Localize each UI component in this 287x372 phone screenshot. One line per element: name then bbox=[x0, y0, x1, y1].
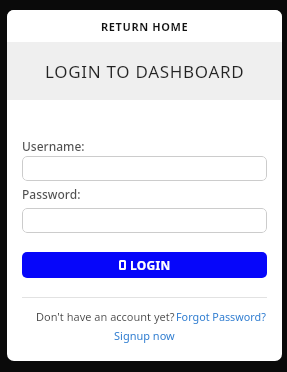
staticText: RETURN HOME bbox=[101, 19, 189, 34]
button[interactable]: Signup now bbox=[114, 328, 175, 343]
button[interactable]: RETURN HOME bbox=[7, 10, 282, 42]
staticText: Username: bbox=[22, 138, 85, 154]
staticText: LOGIN bbox=[130, 257, 171, 273]
staticText: Password: bbox=[22, 186, 81, 202]
staticText: LOGIN TO DASHBOARD bbox=[45, 60, 245, 83]
button[interactable] bbox=[22, 208, 267, 233]
staticText: Don't have an account yet? bbox=[36, 309, 175, 324]
button[interactable]: LOGIN bbox=[22, 252, 267, 278]
button[interactable]: Forgot Password? bbox=[176, 309, 266, 324]
button[interactable] bbox=[22, 156, 267, 181]
